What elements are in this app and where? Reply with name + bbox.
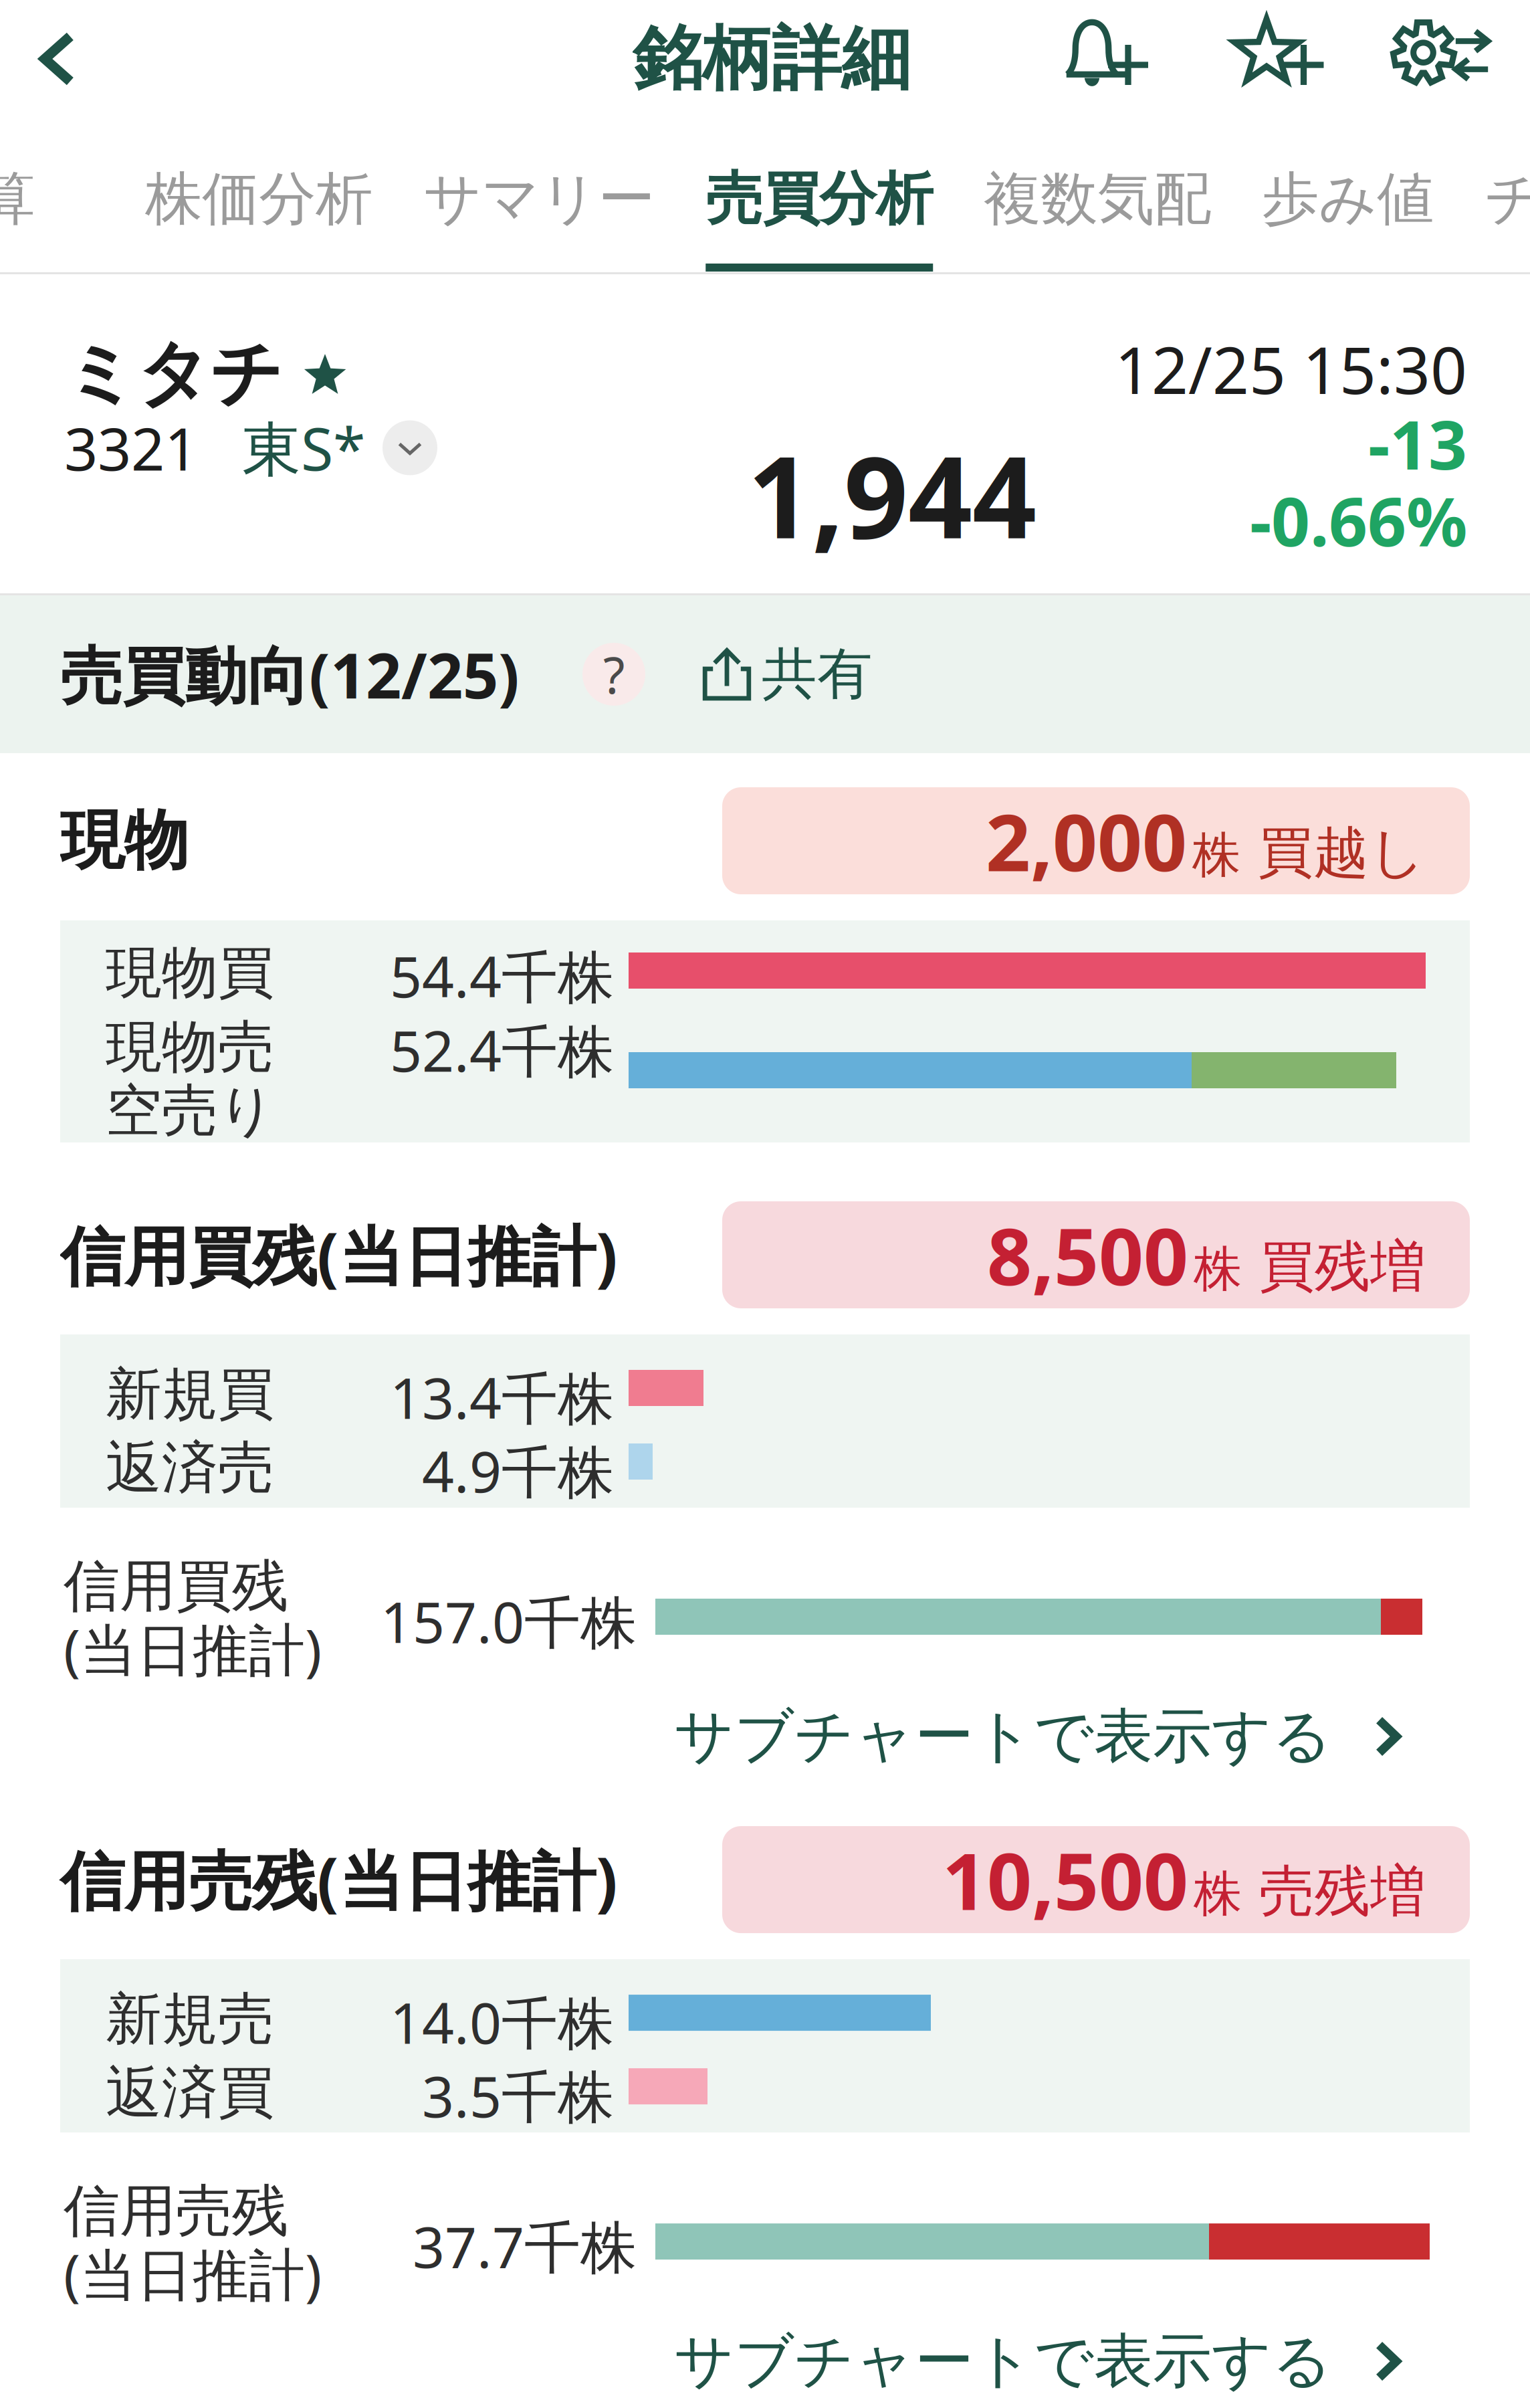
button[interactable]: サブチャートで表示する xyxy=(674,1686,1406,1787)
staticText: 空売り xyxy=(106,1076,276,1145)
button[interactable]: 複数気配 xyxy=(958,118,1237,274)
staticText: サブチャートで表示する xyxy=(674,1700,1332,1773)
staticText: 売残増 xyxy=(1259,1858,1426,1926)
staticText: 株 xyxy=(1192,826,1240,885)
staticText: 現物 xyxy=(60,801,189,880)
staticText: 歩み値 xyxy=(1262,164,1434,234)
staticText: ? xyxy=(603,641,625,707)
staticText: 算 xyxy=(0,164,35,234)
button[interactable]: ヘルプ xyxy=(582,643,645,706)
staticText: チ xyxy=(1485,164,1530,234)
staticText: 返済売 xyxy=(106,1433,274,1502)
staticText: 8,500 xyxy=(987,1203,1188,1307)
staticText: 買残増 xyxy=(1259,1233,1426,1301)
button[interactable]: チ xyxy=(1459,118,1530,274)
staticText: 株 xyxy=(1194,1864,1242,1924)
button[interactable]: 戻る xyxy=(0,0,118,118)
staticText: 現物買 xyxy=(106,938,274,1007)
staticText: 売買動向(12/25) xyxy=(60,633,520,716)
staticText: -0.66% xyxy=(1250,475,1467,565)
staticText: 複数気配 xyxy=(984,164,1211,234)
staticText: 新規売 xyxy=(106,1985,274,2054)
button[interactable]: 共有 xyxy=(700,640,873,708)
button[interactable]: 算 xyxy=(0,118,120,274)
button[interactable]: お気に入り追加 xyxy=(1218,0,1343,118)
staticText: 1,944 xyxy=(748,420,1036,569)
staticText: 新規買 xyxy=(106,1360,274,1429)
staticText: サマリー xyxy=(423,164,655,234)
staticText: 売買分析 xyxy=(706,164,933,234)
button[interactable]: サマリー xyxy=(398,118,680,274)
staticText: 2,000 xyxy=(986,789,1187,893)
button[interactable]: サブチャートで表示する xyxy=(674,2310,1406,2408)
staticText: ミタチ xyxy=(64,330,283,418)
staticText: 4.9千株 xyxy=(422,1433,614,1508)
staticText: 157.0千株 xyxy=(380,1584,637,1659)
button[interactable]: 歩み値 xyxy=(1237,118,1459,274)
staticText: 東S* xyxy=(242,409,365,487)
staticText: 14.0千株 xyxy=(390,1985,614,2059)
staticText: 37.7千株 xyxy=(413,2209,637,2283)
staticText: 現物売 xyxy=(106,1013,274,1082)
staticText: サブチャートで表示する xyxy=(674,2325,1332,2397)
staticText: 54.4千株 xyxy=(390,938,614,1013)
staticText: 12/25 15:30 xyxy=(1115,326,1467,412)
button[interactable]: 売買分析 xyxy=(680,118,958,274)
staticText: 52.4千株 xyxy=(390,1013,614,1087)
button[interactable]: 注文設定 xyxy=(1376,0,1506,118)
staticText: (当日推計) xyxy=(64,1611,322,1686)
staticText: 銘柄詳細 xyxy=(633,16,911,102)
staticText: 買越し xyxy=(1258,819,1426,887)
staticText: 共有 xyxy=(762,640,873,708)
staticText: 株価分析 xyxy=(145,164,373,234)
button[interactable]: 株価分析 xyxy=(120,118,398,274)
staticText: 信用買残(当日推計) xyxy=(60,1212,618,1298)
staticText: 10,500 xyxy=(942,1828,1188,1932)
staticText: 株 xyxy=(1194,1240,1242,1299)
staticText: -13 xyxy=(1368,398,1467,488)
staticText: 信用売残 xyxy=(64,2177,288,2246)
button[interactable]: アラート追加 xyxy=(1046,0,1170,118)
staticText: (当日推計) xyxy=(64,2236,322,2311)
staticText: 信用買残 xyxy=(64,1552,288,1621)
staticText: 3.5千株 xyxy=(422,2058,614,2133)
staticText: 13.4千株 xyxy=(390,1360,614,1434)
staticText: 返済買 xyxy=(106,2058,274,2127)
staticText: 3321 xyxy=(64,409,198,487)
staticText: 信用売残(当日推計) xyxy=(60,1837,618,1922)
